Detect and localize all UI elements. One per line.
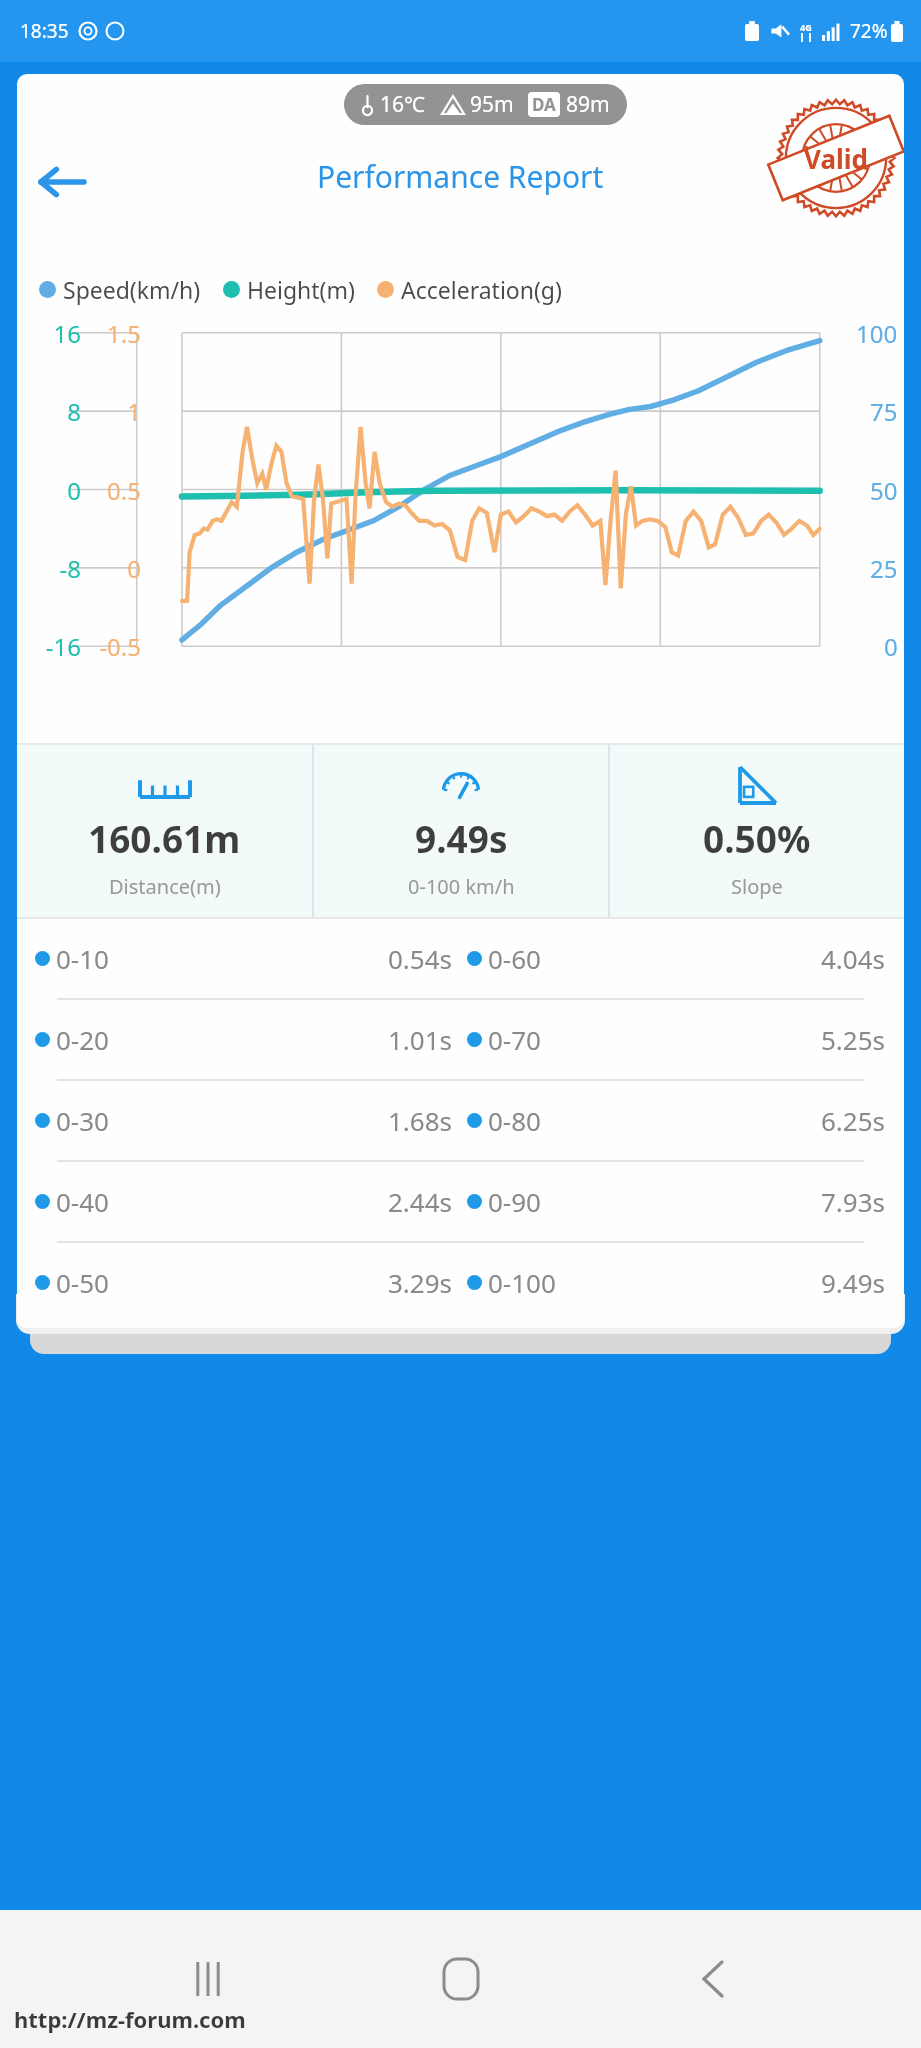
staticText: 4.04s bbox=[821, 941, 886, 976]
staticText: 0-70 bbox=[488, 1022, 541, 1057]
staticText: 0-20 bbox=[56, 1022, 109, 1057]
staticText: 89m bbox=[566, 90, 610, 119]
staticText: 0.50% bbox=[703, 813, 811, 863]
staticText: 0-60 bbox=[488, 941, 541, 976]
staticText: 7.93s bbox=[821, 1184, 886, 1219]
button[interactable]: 160.61m bbox=[17, 745, 312, 917]
staticText: Distance(m) bbox=[109, 873, 221, 900]
staticText: 1.5 bbox=[87, 317, 141, 350]
staticText: 0-40 bbox=[56, 1184, 109, 1219]
staticText: 0 bbox=[884, 630, 898, 663]
staticText: 72% bbox=[850, 18, 888, 44]
button[interactable]: Home bbox=[416, 1934, 506, 2024]
staticText: 0.5 bbox=[87, 474, 141, 507]
staticText: 75 bbox=[870, 395, 898, 428]
staticText: 5.25s bbox=[821, 1022, 886, 1057]
staticText: 0.54s bbox=[388, 941, 453, 976]
staticText: 18:35 bbox=[20, 18, 69, 44]
staticText: Acceleration(g) bbox=[401, 274, 562, 305]
staticText: 6.25s bbox=[821, 1103, 886, 1138]
staticText: 95m bbox=[470, 90, 514, 119]
staticText: -0.5 bbox=[87, 630, 141, 663]
staticText: 16 bbox=[17, 317, 81, 350]
staticText: Valid bbox=[804, 141, 868, 176]
staticText: 1 bbox=[87, 395, 141, 428]
staticText: 16℃ bbox=[380, 90, 425, 119]
staticText: 0 bbox=[87, 552, 141, 585]
staticText: 0-80 bbox=[488, 1103, 541, 1138]
staticText: Slope bbox=[731, 873, 783, 900]
staticText: 9.49s bbox=[415, 813, 508, 863]
button[interactable]: Back bbox=[668, 1934, 758, 2024]
staticText: 0-90 bbox=[488, 1184, 541, 1219]
staticText: 1.68s bbox=[388, 1103, 453, 1138]
staticText: -16 bbox=[17, 630, 81, 663]
staticText: 9.49s bbox=[821, 1265, 886, 1300]
staticText: Speed(km/h) bbox=[63, 274, 201, 305]
staticText: 0 bbox=[17, 474, 81, 507]
button[interactable]: 0-20 bbox=[35, 1000, 886, 1079]
staticText: DA bbox=[532, 93, 556, 116]
staticText: http://mz-forum.com bbox=[14, 2004, 246, 2034]
staticText: 0-10 bbox=[56, 941, 109, 976]
staticText: 0-30 bbox=[56, 1103, 109, 1138]
button[interactable]: 0-10 bbox=[35, 919, 886, 998]
staticText: 160.61m bbox=[88, 813, 241, 863]
button[interactable]: 0-50 bbox=[35, 1243, 886, 1322]
staticText: 1.01s bbox=[388, 1022, 453, 1057]
staticText: 0-100 km/h bbox=[408, 873, 515, 900]
staticText: 0-100 bbox=[488, 1265, 556, 1300]
button[interactable]: 0-40 bbox=[35, 1162, 886, 1241]
staticText: 2.44s bbox=[388, 1184, 453, 1219]
staticText: 25 bbox=[870, 552, 898, 585]
staticText: 8 bbox=[17, 395, 81, 428]
staticText: 50 bbox=[870, 474, 898, 507]
staticText: -8 bbox=[17, 552, 81, 585]
button[interactable]: Back bbox=[31, 152, 91, 212]
staticText: 100 bbox=[856, 317, 898, 350]
button[interactable]: 0-30 bbox=[35, 1081, 886, 1160]
button[interactable]: 16℃ bbox=[361, 90, 610, 119]
staticText: Height(m) bbox=[247, 274, 355, 305]
button[interactable]: Recents bbox=[163, 1934, 253, 2024]
button[interactable]: 9.49s bbox=[314, 745, 608, 917]
staticText: Performance Report bbox=[317, 156, 604, 197]
staticText: 3.29s bbox=[388, 1265, 453, 1300]
button[interactable]: 0.50% bbox=[610, 745, 904, 917]
staticText: 4G bbox=[800, 21, 812, 33]
staticText: 0-50 bbox=[56, 1265, 109, 1300]
